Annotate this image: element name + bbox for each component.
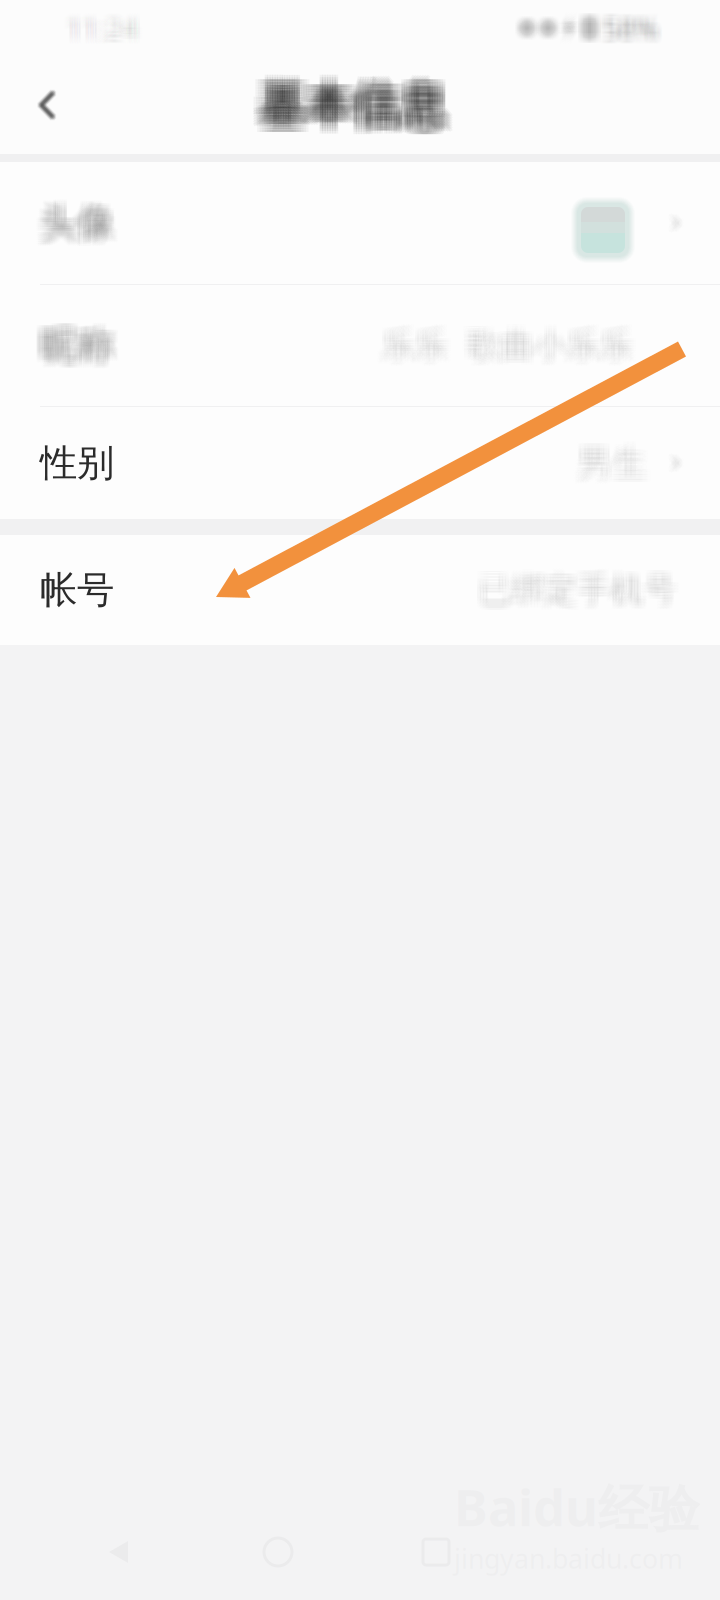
staticText: 11:24 <box>64 6 136 43</box>
staticText: 男生 <box>579 438 649 481</box>
staticText: 已绑定手机号 <box>479 568 677 609</box>
staticText: 58% <box>606 8 661 45</box>
staticText: 11:24 <box>61 14 133 52</box>
staticText: 男生 <box>572 438 642 481</box>
staticText: 头像 <box>38 202 112 248</box>
staticText: 乐乐 歌曲小乐乐 <box>379 320 630 361</box>
staticText: 昵称 <box>34 317 108 363</box>
button[interactable]: 帐号 <box>0 535 720 645</box>
staticText: 已绑定手机号 <box>475 569 673 610</box>
staticText: 已绑定手机号 <box>481 569 679 610</box>
staticText: 乐乐 歌曲小乐乐 <box>379 328 630 369</box>
button[interactable]: 头像 <box>0 162 720 284</box>
staticText: 已绑定手机号 <box>475 574 673 615</box>
staticText: 已绑定手机号 <box>473 568 671 609</box>
staticText: 已绑定手机号 <box>476 566 674 607</box>
button[interactable]: 性别 <box>0 407 720 519</box>
staticText: 58% <box>600 6 655 43</box>
staticText: 昵称 <box>45 321 119 367</box>
staticText: 11:24 <box>66 11 138 48</box>
staticText: 乐乐 歌曲小乐乐 <box>381 327 632 368</box>
staticText: 基本信息 <box>264 81 452 139</box>
staticText: 58% <box>603 8 658 45</box>
staticText: 乐乐 歌曲小乐乐 <box>379 323 630 364</box>
staticText: 男生 <box>582 445 652 488</box>
staticText: 11:24 <box>68 6 140 43</box>
staticText: 已绑定手机号 <box>478 566 676 607</box>
staticText: 昵称 <box>40 319 114 365</box>
staticText: 58% <box>603 14 658 52</box>
staticText: 11:24 <box>66 6 138 43</box>
staticText: 基本信息 <box>261 81 449 139</box>
staticText: 基本信息 <box>259 71 447 129</box>
button[interactable]: 昵称 <box>0 285 720 406</box>
staticText: 基本信息 <box>264 69 452 126</box>
staticText: 基本信息 <box>264 74 452 131</box>
staticText: 头像 <box>38 206 112 251</box>
staticText: 58% <box>601 14 656 52</box>
staticText: 基本信息 <box>251 81 439 139</box>
staticText: 男生 <box>572 437 642 479</box>
staticText: 已绑定手机号 <box>481 572 679 613</box>
staticText: 乐乐 歌曲小乐乐 <box>383 320 634 361</box>
staticText: 乐乐 歌曲小乐乐 <box>381 322 632 363</box>
staticText: 乐乐 歌曲小乐乐 <box>383 323 634 364</box>
staticText: 58% <box>608 8 663 45</box>
staticText: 昵称 <box>40 317 114 363</box>
staticText: 昵称 <box>38 319 112 365</box>
staticText: 昵称 <box>38 326 112 372</box>
staticText: 已绑定手机号 <box>476 571 674 612</box>
staticText: 基本信息 <box>256 84 444 141</box>
staticText: 昵称 <box>36 323 110 368</box>
staticText: 男生 <box>575 445 645 488</box>
staticText: 已绑定手机号 <box>482 571 680 612</box>
staticText: 昵称 <box>36 317 110 363</box>
staticText: 11:24 <box>69 4 141 42</box>
staticText: 58% <box>601 11 656 48</box>
staticText: 58% <box>600 9 655 47</box>
staticText: 基本信息 <box>256 81 444 139</box>
staticText: 11:24 <box>61 4 133 42</box>
staticText: 基本信息 <box>261 76 449 134</box>
staticText: 11:24 <box>61 8 133 45</box>
staticText: 头像 <box>38 200 112 246</box>
staticText: 11:24 <box>71 6 143 43</box>
staticText: 乐乐 歌曲小乐乐 <box>379 330 630 371</box>
staticText: 男生 <box>572 443 642 486</box>
staticText: 基本信息 <box>266 79 454 136</box>
staticText: 头像 <box>38 195 112 240</box>
staticText: 基本信息 <box>251 71 439 129</box>
staticText: 11:24 <box>71 14 143 52</box>
staticText: 头像 <box>34 195 108 240</box>
staticText: 乐乐 歌曲小乐乐 <box>376 320 627 361</box>
staticText: 已绑定手机号 <box>473 569 671 610</box>
staticText: 已绑定手机号 <box>479 569 677 610</box>
staticText: 11:24 <box>68 9 140 47</box>
staticText: 头像 <box>45 200 119 246</box>
staticText: 乐乐 歌曲小乐乐 <box>383 322 634 363</box>
staticText: 乐乐 歌曲小乐乐 <box>386 323 637 364</box>
staticText: 头像 <box>44 200 118 246</box>
staticText: 头像 <box>45 198 119 244</box>
staticText: 头像 <box>40 195 114 240</box>
staticText: 昵称 <box>44 323 118 368</box>
staticText: 头像 <box>34 200 108 246</box>
staticText: 乐乐 歌曲小乐乐 <box>381 325 632 366</box>
staticText: 乐乐 歌曲小乐乐 <box>378 320 629 361</box>
staticText: 11:24 <box>61 13 133 50</box>
staticText: 11:24 <box>69 14 141 52</box>
staticText: 乐乐 歌曲小乐乐 <box>376 323 627 364</box>
staticText: 11:24 <box>63 9 135 47</box>
staticText: 男生 <box>575 447 645 489</box>
staticText: 11:24 <box>69 8 141 45</box>
staticText: 男生 <box>579 445 649 488</box>
staticText: 11:24 <box>61 9 133 47</box>
staticText: 男生 <box>579 440 649 483</box>
button[interactable]: Back <box>0 56 96 154</box>
staticText: 乐乐 歌曲小乐乐 <box>379 327 630 368</box>
staticText: 头像 <box>34 196 108 242</box>
staticText: 头像 <box>34 206 108 251</box>
